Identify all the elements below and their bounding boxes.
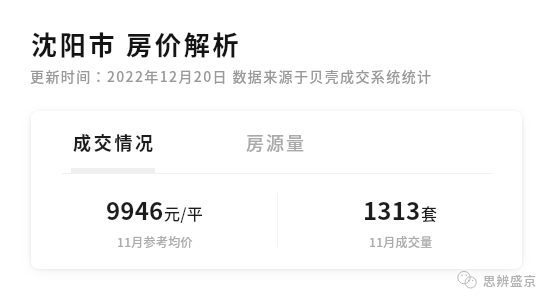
staticText: 9946 <box>106 192 164 227</box>
staticText: 11月成交量 <box>369 233 433 250</box>
staticText: 1313 <box>363 192 421 227</box>
button[interactable]: WeChat official account <box>455 270 538 290</box>
staticText: 沈阳市 房价解析 <box>31 25 242 63</box>
staticText: 房源量 <box>246 129 306 155</box>
button[interactable]: 房源量 <box>230 114 322 170</box>
staticText: 更新时间：2022年12月20日 数据来源于贝壳成交系统统计 <box>30 66 433 86</box>
staticText: 元/平 <box>164 201 203 224</box>
button[interactable]: 1313 <box>278 183 504 255</box>
staticText: 11月参考均价 <box>117 233 193 250</box>
other: WeChat official account <box>455 270 483 290</box>
button[interactable]: 成交情况 <box>57 114 172 170</box>
staticText: 成交情况 <box>73 129 156 155</box>
staticText: 思辨盛京 <box>483 271 538 289</box>
button[interactable]: 9946 <box>51 183 277 255</box>
staticText: 套 <box>421 201 438 224</box>
